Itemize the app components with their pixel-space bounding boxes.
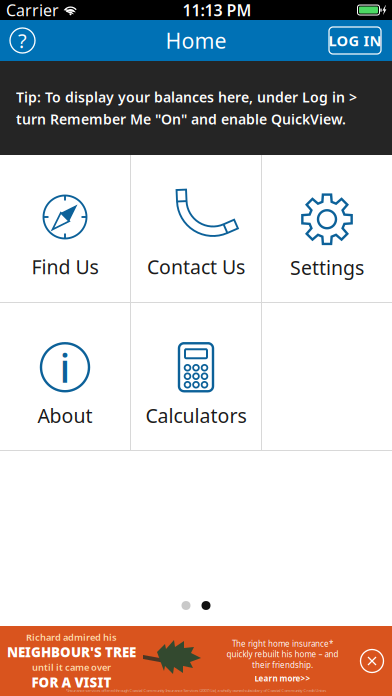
staticText: NEIGHBOUR'S TREE [7,643,136,661]
staticText: About [37,402,92,429]
button[interactable]: Find Us [0,155,130,302]
button[interactable]: LOG IN [329,27,381,54]
button[interactable]: Contact Us [131,155,261,302]
staticText: Carrier [6,0,59,21]
button[interactable]: Calculators [131,303,261,450]
staticText: Tip: To display your balances here, unde… [16,87,357,106]
staticText: Home [165,26,226,55]
staticText: Richard admired his [26,631,117,643]
staticText: The right home insurance* [232,638,333,649]
staticText: Contact Us [147,253,245,280]
staticText: *Insurance services offered through Coas… [65,688,326,693]
staticText: ? [18,27,27,54]
button[interactable]: Close ad [355,644,389,678]
button[interactable]: i [0,303,130,450]
staticText: LOG IN [328,31,381,50]
staticText: Find Us [31,253,98,280]
button[interactable]: Settings [262,155,392,302]
staticText: Calculators [145,402,246,429]
staticText: FOR A VISIT [31,673,111,691]
staticText: i [59,341,70,394]
staticText: quickly rebuilt his home – and [226,649,338,659]
staticText: 11:13 PM [182,0,251,21]
button[interactable]: Help [0,20,45,61]
staticText: Settings [290,254,364,281]
staticText: Learn more>> [254,673,310,684]
staticText: until it came over [32,661,111,673]
staticText: turn Remember Me "On" and enable QuickVi… [16,109,346,129]
staticText: their friendship. [252,659,313,670]
